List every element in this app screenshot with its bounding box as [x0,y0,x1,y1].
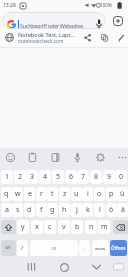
staticText: b [75,222,80,232]
button[interactable]: ä [117,203,128,217]
button[interactable]: r [36,187,47,201]
button[interactable]: n [85,220,97,234]
button[interactable]: 4 [39,170,51,184]
staticText: o [97,189,102,199]
button[interactable]: d [24,203,35,217]
button[interactable] [116,151,128,164]
staticText: !#1 [5,245,12,251]
staticText: j [76,205,78,215]
button[interactable]: . [79,240,90,256]
button[interactable]: 9 [103,170,115,184]
button[interactable] [1,220,16,234]
button[interactable]: e [24,187,35,201]
button[interactable]: ü [117,187,128,201]
button[interactable]: w [12,187,23,201]
button[interactable] [113,220,128,234]
button[interactable]: m [98,220,110,234]
button[interactable]: !#1 [1,240,16,256]
button[interactable] [89,260,104,274]
button[interactable]: Öffnen [110,240,127,256]
button[interactable]: i [82,187,93,201]
staticText: x [35,222,39,232]
button[interactable] [111,14,124,27]
button[interactable]: q [1,187,12,201]
staticText: k [86,205,90,215]
staticText: p [109,189,114,199]
button[interactable]: 1 [1,170,13,184]
staticText: ä [121,205,125,215]
button[interactable]: www. [92,240,109,256]
button[interactable]: s [12,203,23,217]
button[interactable]: p [106,187,117,201]
staticText: w [15,189,21,199]
staticText: 8 [94,172,99,182]
button[interactable] [94,151,107,164]
staticText: notebookcheck.com [18,38,64,45]
staticText: z [63,189,67,199]
staticText: h [62,205,67,215]
button[interactable]: g [47,203,58,217]
button[interactable]: 6 [65,170,77,184]
button[interactable]: h [59,203,70,217]
button[interactable] [26,151,39,164]
button[interactable]: c [44,220,56,234]
button[interactable]: Notebook Test, Lapt... [0,29,128,48]
button[interactable]: 0 [115,170,127,184]
staticText: u [74,189,79,199]
staticText: s [16,205,20,215]
button[interactable]: t [47,187,58,201]
staticText: n [89,222,94,232]
staticText: . [84,244,86,252]
button[interactable] [4,151,17,164]
button[interactable] [57,260,72,274]
staticText: 7 [81,172,86,182]
staticText: ö [109,205,114,215]
button[interactable]: DE [30,240,78,256]
button[interactable]: k [82,203,93,217]
button[interactable]: a [1,203,12,217]
button[interactable]: l [94,203,105,217]
staticText: m [101,222,108,232]
staticText: 5 [56,172,61,182]
staticText: 1 [5,172,10,182]
button[interactable] [71,151,84,164]
staticText: Suchbegriff oder Webadres [20,22,84,29]
button[interactable]: ö [106,203,117,217]
staticText: 100% [100,2,112,8]
button[interactable]: o [94,187,105,201]
staticText: c [48,222,52,232]
staticText: 3 [30,172,35,182]
staticText: q [4,189,9,199]
staticText: a [5,205,9,215]
button[interactable]: j [71,203,82,217]
button[interactable]: z [59,187,70,201]
button[interactable]: b [71,220,83,234]
button[interactable] [24,260,39,274]
button[interactable] [49,151,62,164]
button[interactable]: u [71,187,82,201]
button[interactable]: Suchbegriff oder Webadres [2,12,106,29]
button[interactable]: 8 [90,170,102,184]
button[interactable]: x [31,220,43,234]
staticText: d [27,205,32,215]
staticText: 0 [119,172,124,182]
staticText: ü [120,189,125,199]
staticText: r [40,189,43,199]
staticText: Notebook Test, Lapt... [18,31,76,39]
button[interactable]: v [58,220,70,234]
staticText: l [99,205,101,215]
staticText: g [50,205,55,215]
staticText: 9 [107,172,112,182]
staticText: f [40,205,43,215]
staticText: e [28,189,32,199]
button[interactable]: / [17,240,28,256]
button[interactable]: y [17,220,29,234]
button[interactable]: 2 [14,170,26,184]
button[interactable]: 7 [77,170,89,184]
button[interactable]: 3 [26,170,38,184]
staticText: DE [52,246,57,251]
button[interactable] [110,260,126,274]
staticText: 13:28 [3,2,16,9]
button[interactable]: f [36,203,47,217]
button[interactable]: 5 [52,170,64,184]
